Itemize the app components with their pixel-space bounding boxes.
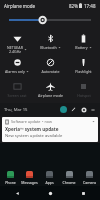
staticText: Messages: [21, 180, 38, 185]
button[interactable]: Messages: [20, 170, 39, 186]
button[interactable]: Edit: [70, 106, 77, 113]
button[interactable]: Phone: [1, 170, 20, 186]
staticText: Alarms only: [5, 69, 25, 74]
button[interactable]: Flashlight: [67, 55, 100, 79]
button[interactable]: Airplane mode: [34, 79, 67, 103]
button[interactable]: Autorotate: [34, 55, 67, 79]
staticText: Flashlight: [75, 69, 92, 74]
button[interactable]: Software update: [2, 117, 98, 142]
button[interactable]: Recents: [67, 186, 100, 200]
button[interactable]: Hotspot: [67, 79, 100, 103]
staticText: 17:48: [84, 3, 96, 9]
button[interactable]: Chrome: [59, 170, 79, 186]
staticText: NETGEAR 2.4GHz: [7, 45, 23, 54]
button[interactable]: Camera: [79, 170, 99, 186]
staticText: Airplane mode: [4, 3, 36, 9]
button[interactable]: Home: [34, 186, 67, 200]
staticText: Autorotate: [41, 69, 60, 74]
button[interactable]: Alarms only: [0, 55, 34, 79]
button[interactable]: Back: [0, 186, 34, 200]
staticText: Apps: [45, 180, 54, 185]
button[interactable]: NETGEAR 2.4GHz: [0, 31, 34, 55]
button[interactable]: Battery: [67, 31, 100, 55]
staticText: Bluetooth: [40, 45, 57, 50]
staticText: New system update available: [5, 133, 63, 139]
staticText: Chrome: [62, 180, 76, 185]
staticText: 82%: [69, 3, 78, 9]
staticText: Airplane mode: [38, 93, 63, 98]
staticText: Phone: [5, 180, 16, 185]
staticText: Hotspot: [77, 93, 91, 98]
button[interactable]: Apps: [39, 170, 59, 186]
staticText: Battery: [75, 45, 88, 50]
button[interactable]: Brightness: [0, 11, 100, 29]
button[interactable]: Screen cast: [0, 79, 34, 103]
staticText: Software update: [11, 119, 41, 124]
staticText: Camera: [83, 180, 96, 185]
button[interactable]: Settings: [80, 106, 87, 113]
button[interactable]: Bluetooth: [34, 31, 67, 55]
button[interactable]: User: [60, 106, 67, 113]
staticText: Xperia™ system update: [5, 126, 59, 132]
staticText: • now: [42, 119, 52, 124]
staticText: Thu, Mar 15: [4, 107, 28, 113]
staticText: Screen cast: [7, 93, 27, 98]
button[interactable]: Collapse: [90, 107, 96, 113]
